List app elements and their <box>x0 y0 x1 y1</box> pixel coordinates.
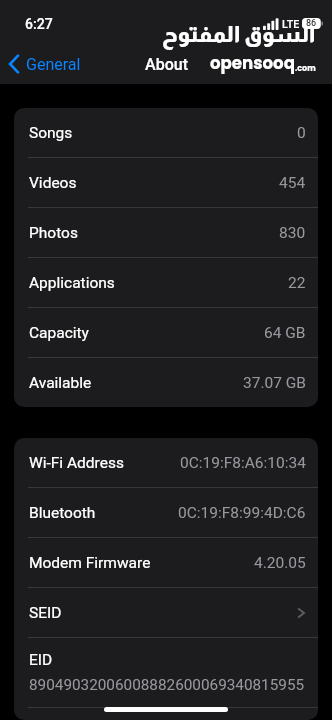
staticText: السوق المفتوح <box>162 22 316 47</box>
staticText: Available <box>29 374 92 392</box>
staticText: 86 <box>306 18 317 29</box>
button[interactable]: Bluetooth <box>14 488 318 537</box>
staticText: 0 <box>297 124 306 142</box>
staticText: .com <box>295 63 316 74</box>
staticText: SEID <box>29 604 62 622</box>
staticText: 37.07 GB <box>243 374 306 392</box>
staticText: General <box>26 55 81 74</box>
button[interactable]: Applications <box>14 258 318 307</box>
staticText: LTE <box>282 18 300 31</box>
button[interactable]: General <box>5 54 81 74</box>
button[interactable]: Modem Firmware <box>14 538 318 587</box>
staticText: 0C:19:F8:99:4D:C6 <box>178 504 306 522</box>
button[interactable]: Photos <box>14 208 318 257</box>
button[interactable]: Videos <box>14 158 318 207</box>
staticText: 4.20.05 <box>254 554 306 572</box>
staticText: Videos <box>29 174 77 192</box>
staticText: Photos <box>29 224 78 242</box>
staticText: 22 <box>288 274 306 292</box>
staticText: About <box>145 55 188 74</box>
button[interactable]: SEID <box>14 588 318 637</box>
staticText: 830 <box>279 224 306 242</box>
staticText: opensooq <box>210 52 295 75</box>
button[interactable]: Capacity <box>14 308 318 357</box>
staticText: 89049032006008882600069340815955 <box>29 676 305 694</box>
button[interactable]: Wi-Fi Address <box>14 438 318 487</box>
staticText: 64 GB <box>264 324 306 342</box>
button[interactable]: Available <box>14 358 318 407</box>
staticText: 6:27 <box>25 16 53 32</box>
button[interactable]: EID <box>14 638 318 707</box>
staticText: Songs <box>29 124 73 142</box>
staticText: Applications <box>29 274 115 292</box>
staticText: Bluetooth <box>29 504 96 522</box>
staticText: EID <box>29 651 53 669</box>
staticText: Capacity <box>29 324 89 342</box>
staticText: Modem Firmware <box>29 554 151 572</box>
staticText: Wi-Fi Address <box>29 454 124 472</box>
staticText: 454 <box>279 174 306 192</box>
button[interactable]: Songs <box>14 108 318 157</box>
staticText: 0C:19:F8:A6:10:34 <box>180 454 306 472</box>
